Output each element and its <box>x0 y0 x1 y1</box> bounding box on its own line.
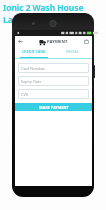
staticText: PAYPAL <box>66 49 79 54</box>
staticText: Ionic 2 Wash House Laundry <box>3 2 106 26</box>
staticText: Expiry Date <box>21 79 42 84</box>
button[interactable]: Cart <box>81 36 92 47</box>
button[interactable]: PAYPAL <box>53 47 92 58</box>
button[interactable]: CREDIT CARD <box>15 47 53 58</box>
button[interactable]: Expiry Date <box>18 76 89 86</box>
staticText: Card Number <box>21 66 46 71</box>
staticText: PAYMENT <box>47 39 68 45</box>
staticText: CREDIT CARD <box>22 49 46 54</box>
button[interactable]: Card Number <box>18 63 89 73</box>
button[interactable]: CVV <box>18 89 89 99</box>
button[interactable]: MAKE PAYMENT <box>15 103 92 111</box>
button[interactable]: Back <box>15 36 26 47</box>
staticText: MAKE PAYMENT <box>39 105 69 110</box>
staticText: CVV <box>21 92 28 97</box>
